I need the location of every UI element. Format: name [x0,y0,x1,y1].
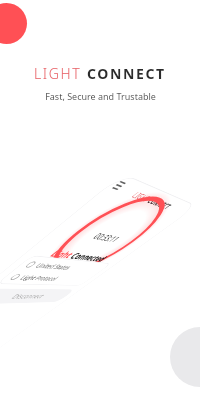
button[interactable]: Disconnect [0,288,76,304]
staticText: Light Protocol [18,273,61,282]
staticText: Connected [67,250,111,263]
staticText: Fast, Secure and Trustable [45,90,156,102]
staticText: Light [47,247,78,260]
staticText: LIGHT [34,64,87,83]
button[interactable]: Light Protocol [8,273,89,283]
staticText: LIGHT [129,189,156,204]
staticText: CONNECT [145,195,175,211]
button[interactable]: United States [23,260,103,273]
button[interactable]: Menu [108,178,130,192]
staticText: United States [33,261,75,271]
staticText: CONNECT [87,64,166,83]
staticText: 00:33:11 [90,230,124,244]
staticText: Disconnect [9,292,48,300]
